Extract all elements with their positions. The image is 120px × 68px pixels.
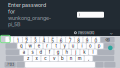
- button[interactable]: d: [37, 49, 45, 55]
- staticText: 6: [60, 38, 63, 43]
- button[interactable]: r: [43, 43, 51, 49]
- staticText: m: [78, 56, 82, 61]
- button[interactable]: &: [66, 37, 74, 42]
- staticText: ): [95, 36, 96, 39]
- button[interactable]: a: [20, 49, 28, 55]
- staticText: n: [70, 56, 73, 61]
- staticText: i: [81, 43, 82, 49]
- staticText: w: [28, 43, 31, 49]
- button[interactable]: [6, 49, 19, 55]
- button[interactable]: *: [75, 37, 83, 42]
- button[interactable]: p: [95, 43, 103, 49]
- button[interactable]: z: [24, 56, 32, 61]
- staticText: ,: [88, 56, 89, 61]
- button[interactable]: [104, 43, 115, 49]
- staticText: 7: [69, 38, 71, 43]
- button[interactable]: [98, 49, 114, 55]
- button[interactable]: e: [35, 43, 43, 49]
- staticText: k: [83, 50, 85, 55]
- staticText: 9: [86, 38, 89, 43]
- button[interactable]: q: [17, 43, 25, 49]
- button[interactable]: [25, 62, 95, 67]
- staticText: l: [92, 50, 93, 55]
- staticText: 3: [34, 38, 37, 43]
- staticText: Enter password for: [8, 2, 46, 15]
- staticText: &: [69, 36, 71, 39]
- button[interactable]: k: [80, 49, 88, 55]
- button[interactable]: f: [46, 49, 54, 55]
- button[interactable]: i: [78, 43, 86, 49]
- button[interactable]: [16, 62, 24, 67]
- button[interactable]: l: [89, 49, 97, 55]
- button[interactable]: ^: [57, 37, 65, 42]
- staticText: ^: [61, 36, 62, 39]
- button[interactable]: s: [28, 49, 36, 55]
- staticText: ~: [8, 36, 10, 39]
- staticText: 8: [77, 38, 80, 43]
- button[interactable]: t: [52, 43, 60, 49]
- staticText: e: [38, 43, 40, 49]
- button[interactable]: h: [63, 49, 71, 55]
- staticText: q: [20, 43, 23, 49]
- staticText: `: [9, 38, 10, 43]
- staticText: f: [49, 50, 51, 55]
- staticText: u: [72, 43, 75, 49]
- button[interactable]: c: [41, 56, 49, 61]
- staticText: ⌫: [105, 37, 110, 42]
- button[interactable]: j: [72, 49, 80, 55]
- button[interactable]: n: [67, 56, 75, 61]
- button[interactable]: m: [76, 56, 84, 61]
- button[interactable]: x: [33, 56, 41, 61]
- staticText: 1: [17, 38, 19, 43]
- button[interactable]: v: [50, 56, 58, 61]
- button[interactable]: g: [54, 49, 62, 55]
- staticText: #: [34, 36, 36, 39]
- staticText: r: [46, 43, 48, 49]
- button[interactable]: @: [23, 37, 31, 42]
- staticText: o: [89, 43, 92, 49]
- button[interactable]: ,: [84, 56, 92, 61]
- staticText: j: [75, 50, 76, 55]
- button[interactable]: [96, 62, 104, 67]
- staticText: g: [57, 50, 60, 55]
- staticText: s: [31, 50, 33, 55]
- button[interactable]: !: [14, 37, 22, 42]
- button[interactable]: Password: [74, 30, 94, 35]
- button[interactable]: Hide keyboard: [109, 30, 114, 35]
- staticText: 2: [25, 38, 28, 43]
- button[interactable]: w: [26, 43, 34, 49]
- staticText: p: [98, 43, 101, 49]
- staticText: wunkong_orangepi_5B: [8, 15, 51, 27]
- button[interactable]: ~: [5, 37, 13, 42]
- button[interactable]: b: [58, 56, 66, 61]
- staticText: 0: [94, 38, 97, 43]
- staticText: $: [43, 36, 45, 39]
- button[interactable]: u: [69, 43, 77, 49]
- button[interactable]: %: [49, 37, 57, 42]
- staticText: h: [65, 50, 68, 55]
- button[interactable]: o: [87, 43, 95, 49]
- staticText: c: [44, 56, 46, 61]
- staticText: @: [25, 36, 28, 39]
- button[interactable]: $: [40, 37, 48, 42]
- staticText: v: [53, 56, 55, 61]
- staticText: y: [64, 43, 66, 49]
- button[interactable]: #: [31, 37, 39, 42]
- button[interactable]: [104, 62, 115, 67]
- staticText: ⌄: [109, 30, 113, 35]
- staticText: x: [36, 56, 38, 61]
- staticText: %: [51, 36, 54, 39]
- button[interactable]: [5, 43, 17, 49]
- staticText: .?123: [6, 63, 14, 66]
- staticText: z: [27, 56, 29, 61]
- staticText: 4: [42, 38, 45, 43]
- button[interactable]: .?123: [4, 62, 16, 67]
- staticText: a: [23, 50, 25, 55]
- staticText: *: [78, 36, 79, 39]
- button[interactable]: y: [61, 43, 69, 49]
- button[interactable]: ⌫: [101, 37, 115, 42]
- button[interactable]: ): [92, 37, 100, 42]
- button[interactable]: (: [83, 37, 91, 42]
